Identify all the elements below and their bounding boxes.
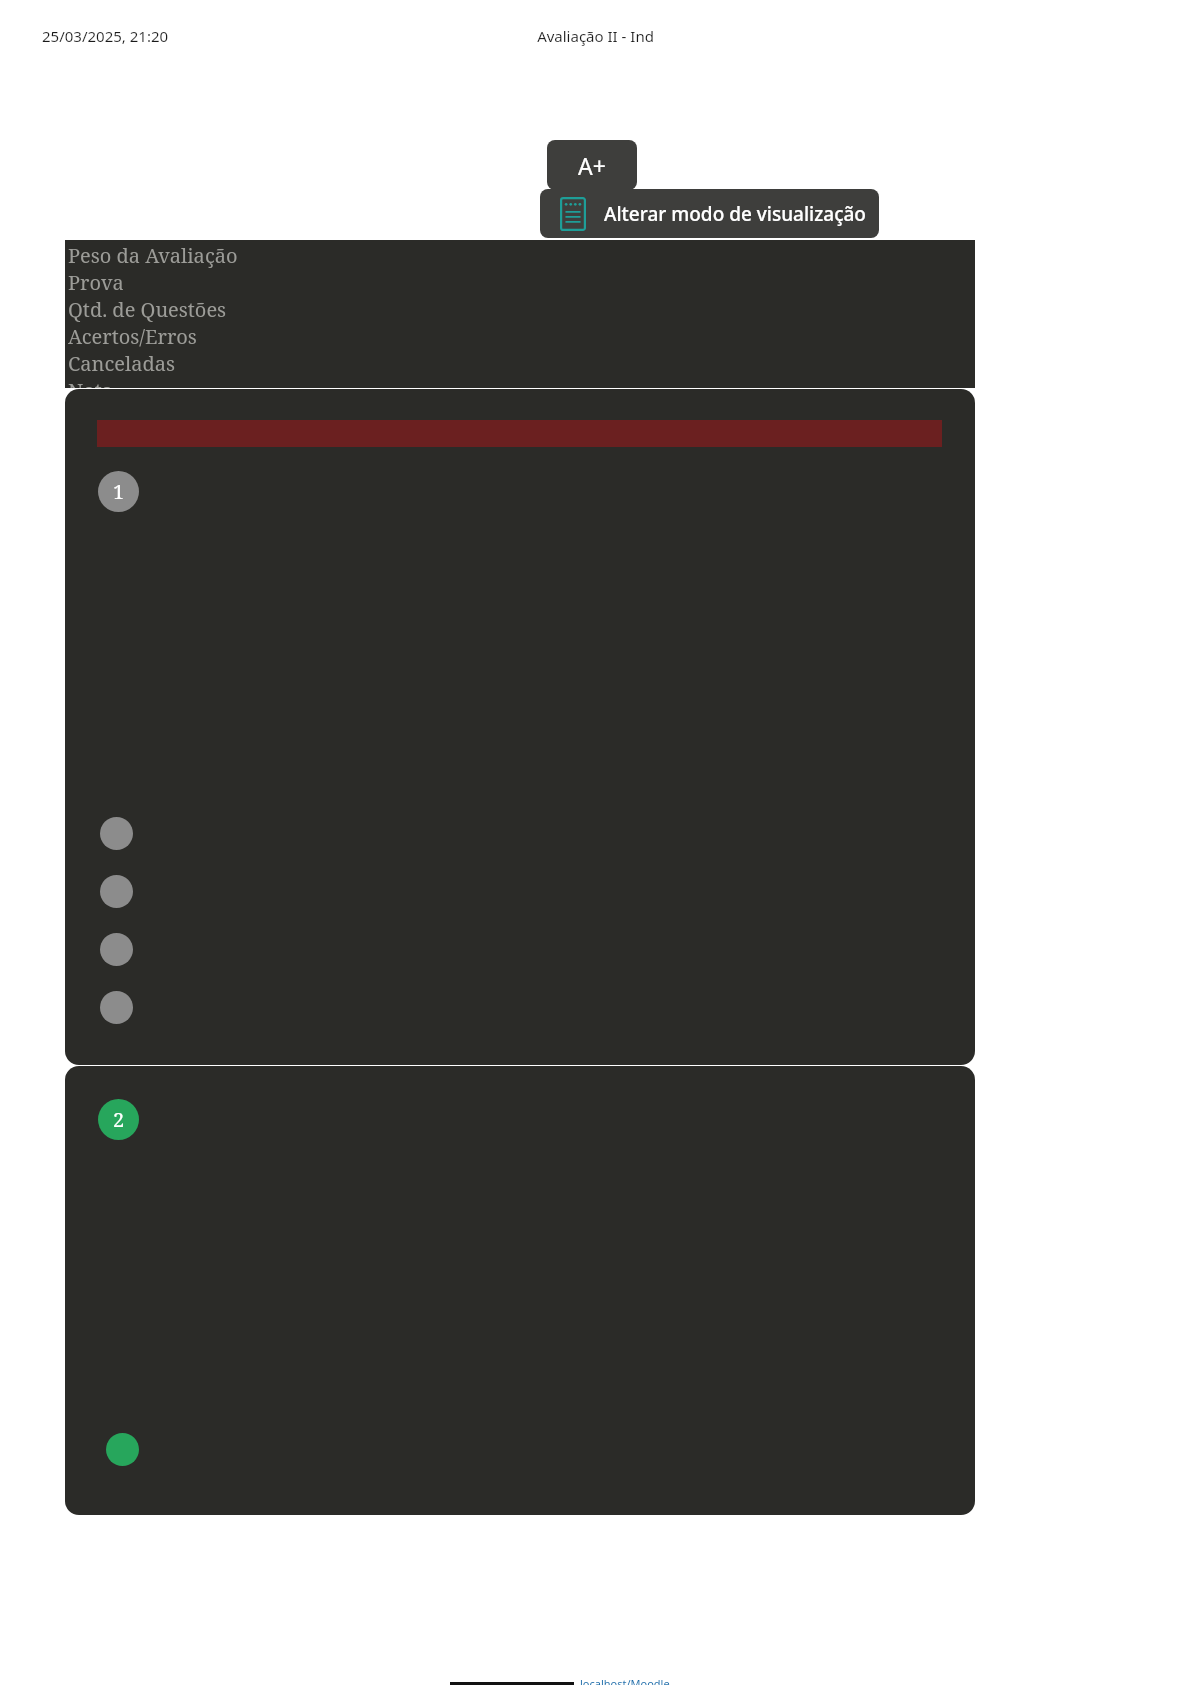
button[interactable]: A+ bbox=[547, 140, 637, 190]
staticText: localhost/Moodle bbox=[580, 1676, 670, 1685]
staticText: Alterar modo de visualização bbox=[604, 201, 866, 227]
staticText: Acertos/Erros bbox=[68, 323, 197, 350]
button[interactable]: 1 bbox=[65, 389, 975, 1065]
staticText: Nota bbox=[68, 377, 114, 388]
button[interactable] bbox=[100, 875, 133, 908]
button[interactable] bbox=[100, 933, 133, 966]
button[interactable]: Alterar modo de visualização bbox=[540, 189, 879, 238]
staticText: A+ bbox=[578, 150, 606, 181]
staticText: 1 bbox=[113, 478, 125, 505]
button[interactable] bbox=[100, 991, 133, 1024]
button[interactable]: 2 bbox=[98, 1099, 139, 1140]
staticText: 25/03/2025, 21:20 bbox=[42, 26, 169, 46]
staticText: 2 bbox=[113, 1106, 125, 1133]
button[interactable]: 1 bbox=[98, 471, 139, 512]
button[interactable] bbox=[106, 1433, 139, 1466]
button[interactable] bbox=[100, 817, 133, 850]
staticText: Qtd. de Questões bbox=[68, 296, 227, 323]
button[interactable]: 2 bbox=[65, 1066, 975, 1515]
staticText: Canceladas bbox=[68, 350, 175, 377]
staticText: Prova bbox=[68, 269, 124, 296]
staticText: Peso da Avaliação bbox=[68, 242, 238, 269]
staticText: Avaliação II - Ind bbox=[537, 26, 654, 46]
